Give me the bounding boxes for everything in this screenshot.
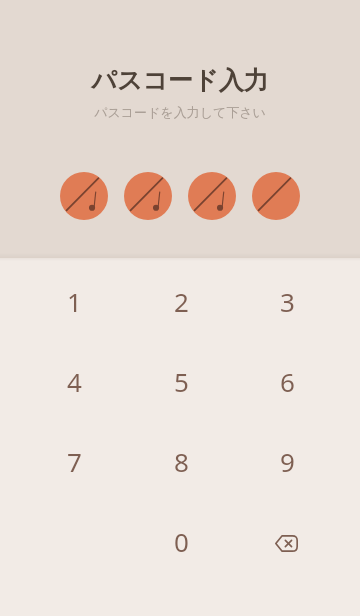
button[interactable]: 0 xyxy=(128,501,234,581)
button[interactable]: 4 xyxy=(21,341,128,421)
staticText: 3 xyxy=(280,284,295,319)
button[interactable]: 3 xyxy=(234,261,340,341)
button[interactable]: 9 xyxy=(234,421,340,501)
button[interactable]: 6 xyxy=(234,341,340,421)
staticText: 2 xyxy=(174,284,189,319)
staticText: パスコードを入力して下さい xyxy=(94,104,266,120)
button[interactable]: 7 xyxy=(21,421,128,501)
other: Backspace xyxy=(275,535,298,552)
staticText: 4 xyxy=(67,364,82,399)
staticText: パスコード入力 xyxy=(91,65,269,96)
staticText: 1 xyxy=(67,284,82,319)
staticText: 7 xyxy=(67,444,82,479)
button[interactable]: 2 xyxy=(128,261,234,341)
staticText: 8 xyxy=(174,444,189,479)
staticText: 5 xyxy=(174,364,189,399)
button[interactable]: 1 xyxy=(21,261,128,341)
staticText: 9 xyxy=(280,444,295,479)
button[interactable]: 5 xyxy=(128,341,234,421)
staticText: 6 xyxy=(280,364,295,399)
button[interactable]: 8 xyxy=(128,421,234,501)
staticText: 0 xyxy=(174,524,189,559)
button[interactable]: Delete xyxy=(234,501,340,581)
